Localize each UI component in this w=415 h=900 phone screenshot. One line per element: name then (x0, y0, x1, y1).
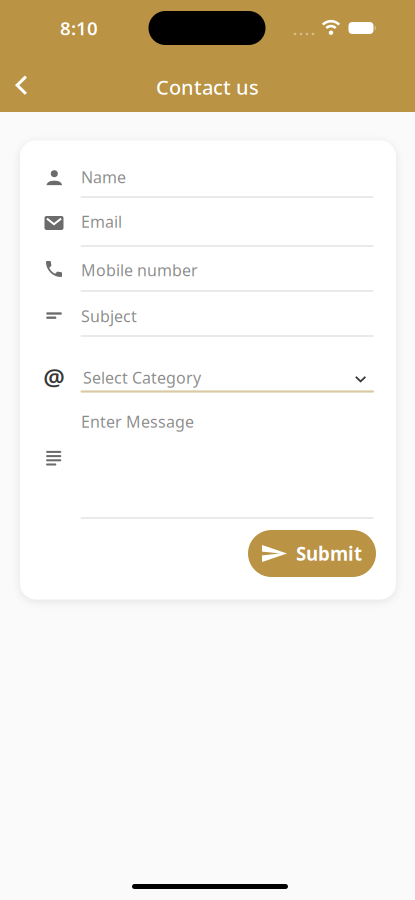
staticText: Email (81, 211, 122, 232)
staticText: Subject (81, 305, 137, 327)
staticText: @ (43, 361, 65, 393)
staticText: Mobile number (81, 259, 198, 281)
button[interactable]: Back (0, 63, 43, 107)
button[interactable]: Select Category (80, 362, 373, 392)
staticText: Select Category (83, 367, 201, 388)
staticText: Contact us (156, 74, 259, 100)
staticText: 8:10 (60, 16, 98, 40)
staticText: Submit (296, 541, 362, 566)
button[interactable]: Submit (248, 530, 376, 577)
staticText: Enter Message (81, 411, 194, 432)
staticText: Name (81, 166, 126, 188)
